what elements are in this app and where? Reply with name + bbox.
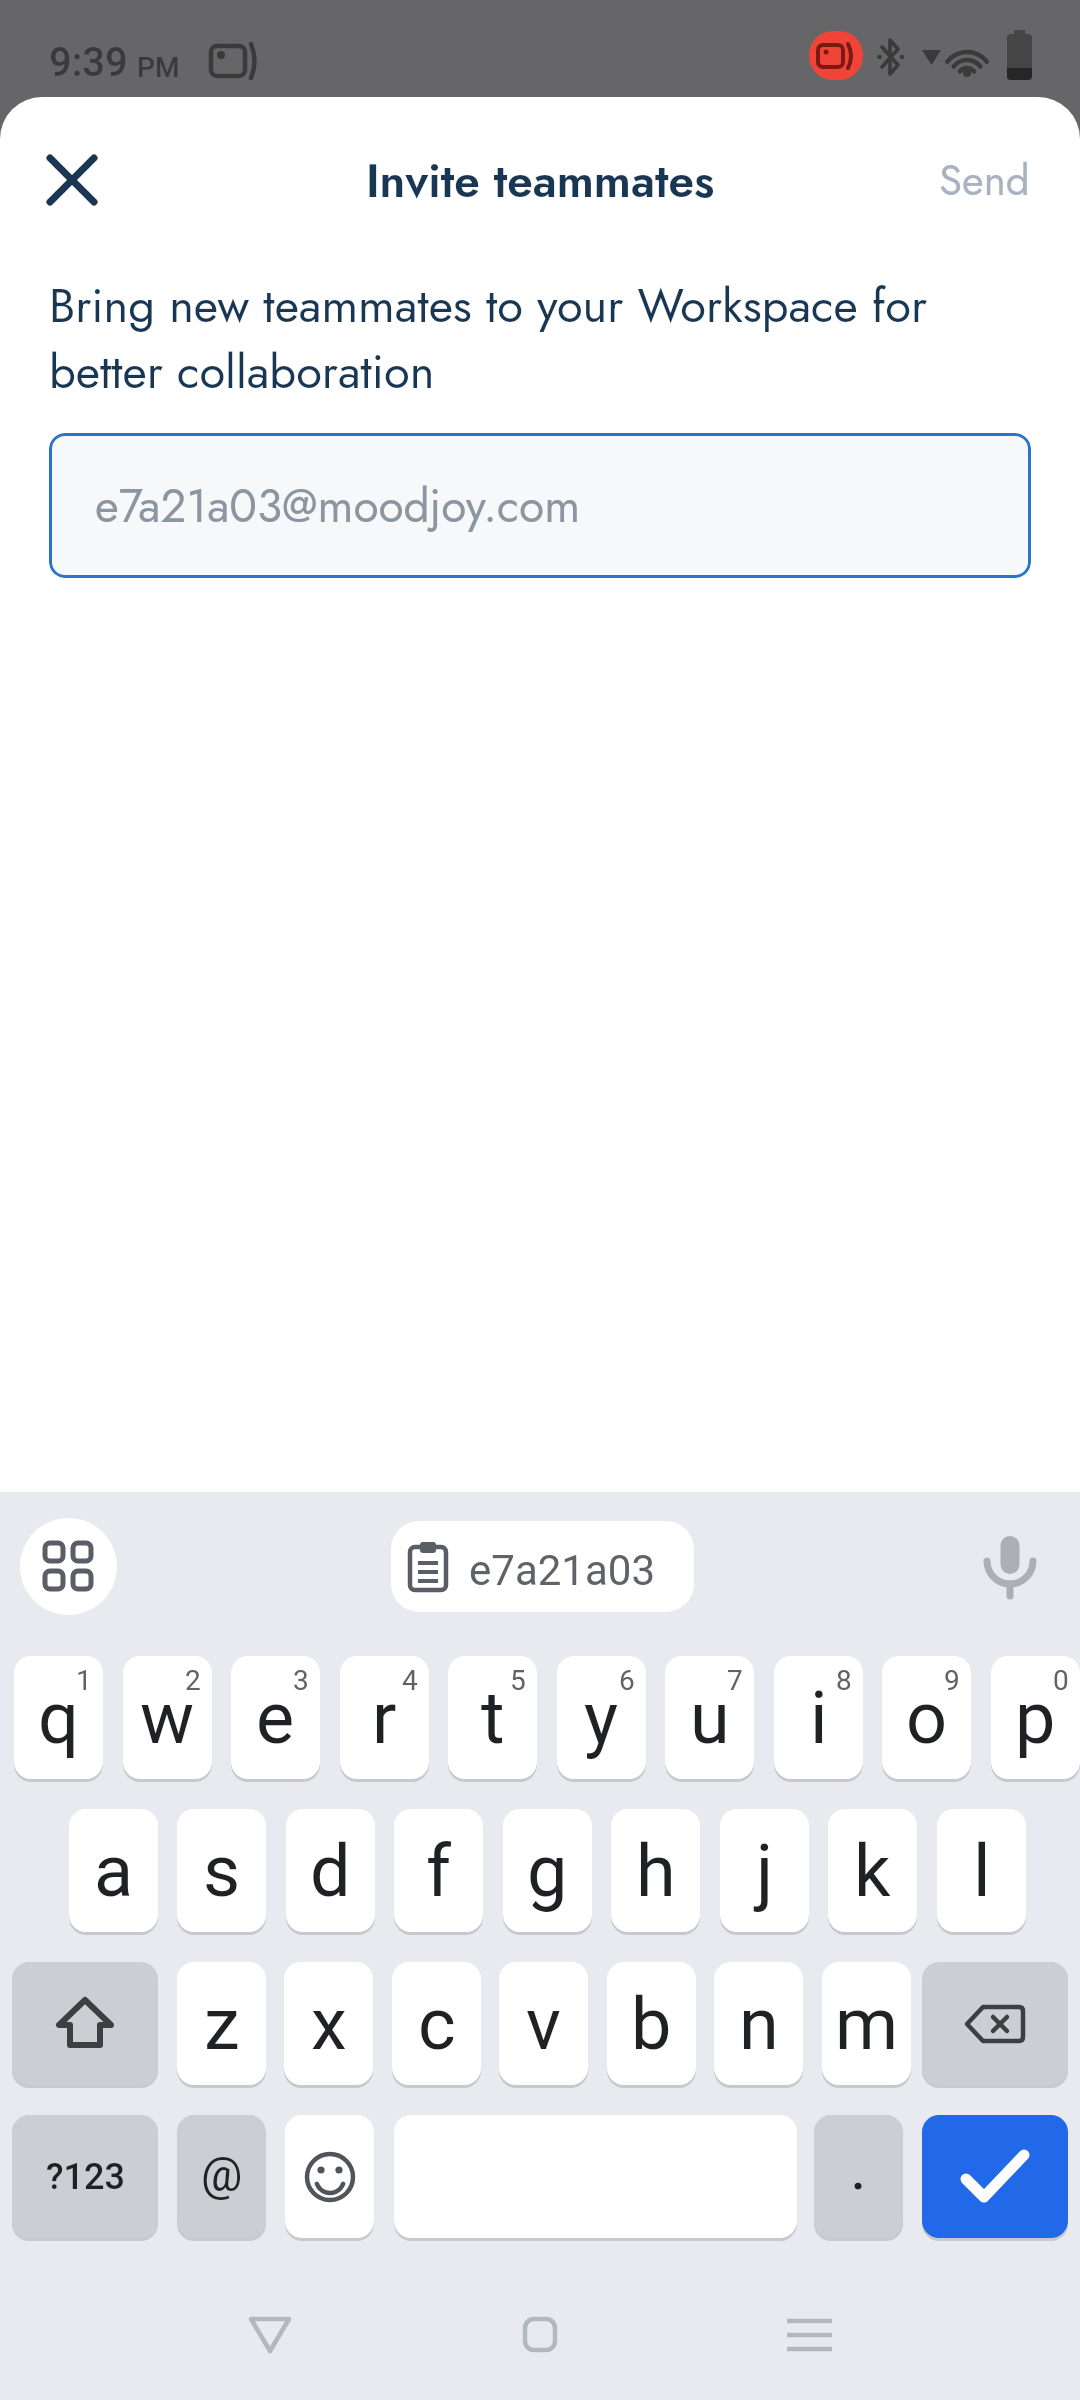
button[interactable] (20, 1518, 117, 1615)
button[interactable]: z (177, 1962, 266, 2085)
button[interactable]: n (714, 1962, 803, 2085)
button[interactable]: x (284, 1962, 373, 2085)
staticText: k (854, 1829, 891, 1913)
staticText: 6 (619, 1664, 635, 1697)
button[interactable]: e7a21a03 (391, 1521, 694, 1612)
staticText: 9 (944, 1664, 960, 1697)
staticText: f (426, 1829, 452, 1913)
staticText: w (140, 1676, 195, 1760)
staticText: x (311, 1982, 347, 2066)
button[interactable]: u (665, 1656, 754, 1779)
staticText: j (756, 1829, 774, 1913)
staticText: Invite teammates (366, 148, 715, 214)
button[interactable]: e (231, 1656, 320, 1779)
staticText: a (94, 1829, 134, 1913)
staticText: Bring new teammates to your Workspace fo… (49, 272, 928, 340)
button[interactable]: l (937, 1809, 1026, 1932)
staticText: 7 (727, 1664, 743, 1697)
button[interactable]: c (392, 1962, 481, 2085)
staticText: c (418, 1982, 456, 2066)
staticText: Send (939, 150, 1030, 211)
staticText: q (38, 1676, 79, 1760)
staticText: better collaboration (49, 338, 435, 406)
staticText: n (739, 1982, 779, 2066)
button[interactable]: g (503, 1809, 592, 1932)
staticText: 4 (402, 1664, 418, 1697)
staticText: e (256, 1676, 295, 1760)
button[interactable]: . (814, 2115, 903, 2238)
staticText: i (810, 1676, 828, 1760)
button[interactable]: j (720, 1809, 809, 1932)
button[interactable] (922, 2115, 1068, 2238)
staticText: d (310, 1829, 351, 1913)
button[interactable] (285, 2115, 374, 2238)
staticText: 1 (76, 1664, 92, 1697)
staticText: . (851, 2141, 866, 2202)
staticText: ?123 (46, 2156, 125, 2198)
button[interactable]: k (828, 1809, 917, 1932)
button[interactable]: d (286, 1809, 375, 1932)
button[interactable] (35, 143, 109, 217)
staticText: 0 (1053, 1664, 1069, 1697)
staticText: 9:39 (49, 39, 128, 86)
staticText: PM (137, 51, 180, 84)
button[interactable] (922, 1962, 1068, 2085)
button[interactable]: a (69, 1809, 158, 1932)
button[interactable]: f (394, 1809, 483, 1932)
button[interactable]: ?123 (12, 2115, 158, 2238)
staticText: m (835, 1982, 899, 2066)
button[interactable]: b (607, 1962, 696, 2085)
staticText: b (631, 1982, 672, 2066)
button[interactable] (230, 2295, 310, 2375)
staticText: r (372, 1676, 397, 1760)
button[interactable]: s (177, 1809, 266, 1932)
button[interactable]: i (774, 1656, 863, 1779)
staticText: 8 (836, 1664, 852, 1697)
staticText: e7a21a03 (469, 1546, 655, 1595)
button[interactable]: o (882, 1656, 971, 1779)
button[interactable]: m (822, 1962, 911, 2085)
staticText: 3 (293, 1664, 309, 1697)
staticText: o (906, 1676, 948, 1760)
button[interactable]: q (14, 1656, 103, 1779)
button[interactable]: w (123, 1656, 212, 1779)
staticText: h (636, 1829, 676, 1913)
button[interactable] (12, 1962, 158, 2085)
button[interactable]: Send (939, 150, 1030, 211)
button[interactable]: y (557, 1656, 646, 1779)
staticText: z (204, 1982, 240, 2066)
staticText: u (690, 1676, 730, 1760)
button[interactable] (500, 2295, 580, 2375)
staticText: @ (201, 2148, 243, 2202)
button[interactable]: @ (177, 2115, 266, 2238)
staticText: 2 (185, 1664, 201, 1697)
staticText: p (1015, 1676, 1056, 1760)
staticText: s (203, 1829, 241, 1913)
staticText: v (526, 1982, 561, 2066)
button[interactable]: h (611, 1809, 700, 1932)
staticText: 5 (510, 1664, 526, 1697)
staticText: g (527, 1829, 568, 1913)
button[interactable] (770, 2295, 850, 2375)
staticText: l (973, 1829, 991, 1913)
staticText: y (584, 1676, 619, 1760)
button[interactable]: r (340, 1656, 429, 1779)
staticText: t (481, 1676, 505, 1760)
staticText: e7a21a03@moodjoy.com (95, 473, 581, 539)
button[interactable]: p (991, 1656, 1080, 1779)
button[interactable]: t (448, 1656, 537, 1779)
button[interactable]: e7a21a03@moodjoy.com (49, 433, 1031, 578)
button[interactable]: v (499, 1962, 588, 2085)
